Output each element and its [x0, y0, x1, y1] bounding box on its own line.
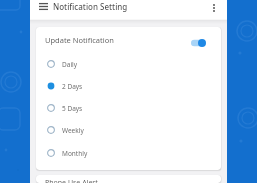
staticText: Weekly [62, 126, 84, 135]
button[interactable]: Update Notification [36, 27, 221, 53]
button[interactable]: Update Notification toggle [191, 37, 205, 49]
staticText: 2 Days [62, 82, 83, 91]
button[interactable]: 2 Days [36, 75, 221, 97]
button[interactable]: Weekly [36, 119, 221, 141]
staticText: Daily [62, 60, 78, 69]
staticText: Notification Setting [53, 1, 128, 12]
button[interactable]: Monthly [36, 142, 221, 164]
button[interactable]: Menu [35, 0, 51, 14]
staticText: 5 Days [62, 104, 83, 113]
staticText: Phone Use Alert [45, 178, 98, 183]
button[interactable]: Daily [36, 53, 221, 75]
staticText: Update Notification [45, 35, 114, 45]
button[interactable]: More options [207, 1, 221, 15]
button[interactable]: 5 Days [36, 97, 221, 119]
staticText: Monthly [62, 149, 88, 158]
